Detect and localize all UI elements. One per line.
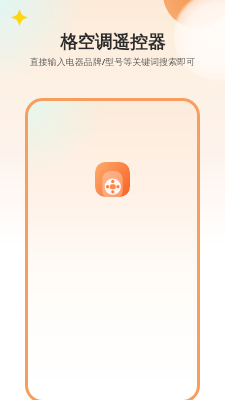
staticText: 直接输入电器品牌/型号等关键词搜索即可 [0,55,225,67]
button[interactable]: 空调遥控器 [95,162,130,197]
button[interactable]: 空调遥控器 [25,98,200,400]
staticText: 格空调遥控器 [0,31,225,53]
